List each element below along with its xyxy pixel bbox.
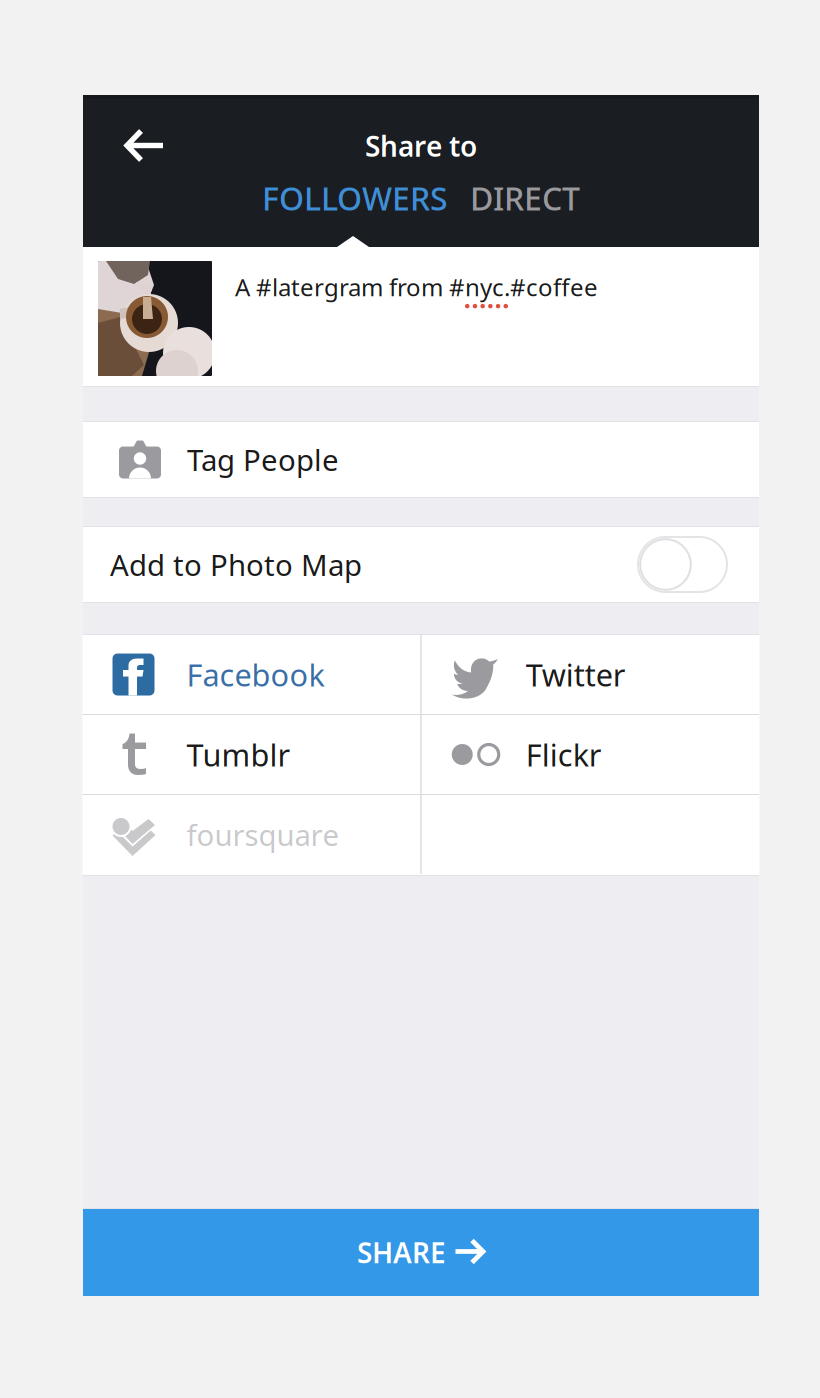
staticText: Flickr xyxy=(526,734,602,775)
staticText: DIRECT xyxy=(470,177,580,219)
staticText: Twitter xyxy=(526,654,626,695)
button[interactable]: Facebook xyxy=(82,635,420,714)
button[interactable]: Flickr xyxy=(422,715,760,794)
button[interactable]: SHARE xyxy=(83,1209,759,1296)
button[interactable]: Twitter xyxy=(422,635,760,714)
button[interactable]: Tumblr xyxy=(82,715,420,794)
staticText: Tag People xyxy=(187,440,339,479)
staticText: Share to xyxy=(365,127,477,165)
staticText: foursquare xyxy=(186,815,339,854)
button[interactable]: FOLLOWERS xyxy=(262,175,448,221)
staticText: Facebook xyxy=(186,654,324,695)
staticText: SHARE xyxy=(357,1234,446,1271)
staticText: Add to Photo Map xyxy=(110,545,362,584)
button[interactable]: DIRECT xyxy=(470,175,580,221)
button[interactable]: Add to Photo Map xyxy=(638,537,727,592)
button[interactable]: Tag People xyxy=(83,422,759,497)
button[interactable]: foursquare xyxy=(82,795,420,874)
staticText: FOLLOWERS xyxy=(262,177,448,219)
staticText: Tumblr xyxy=(186,734,290,775)
button[interactable]: Back xyxy=(83,117,207,175)
staticText: A #latergram from #nyc.#coffee xyxy=(235,271,598,303)
